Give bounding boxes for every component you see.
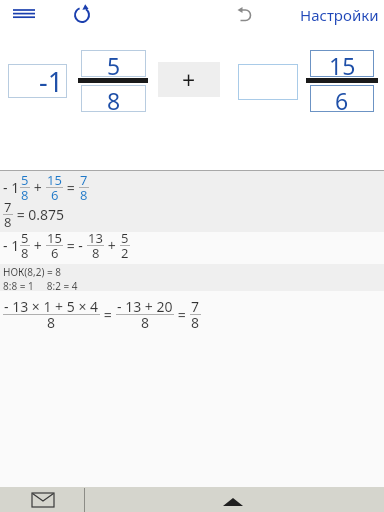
staticText: - 1: [3, 178, 20, 197]
button[interactable]: [238, 64, 298, 100]
button[interactable]: [70, 2, 94, 26]
staticText: +: [182, 64, 196, 95]
staticText: = -: [63, 236, 87, 255]
button[interactable]: Настройки: [300, 0, 384, 30]
staticText: 5: [21, 229, 29, 247]
button[interactable]: - 1: [3, 231, 130, 260]
staticText: 8: [21, 186, 29, 204]
staticText: 6: [51, 244, 59, 262]
button[interactable]: [20, 487, 65, 512]
staticText: -1: [39, 63, 64, 100]
staticText: = 0.875: [13, 205, 65, 224]
staticText: =: [174, 305, 190, 324]
staticText: 8: [191, 313, 200, 332]
button[interactable]: - 1: [3, 173, 89, 202]
staticText: =: [63, 178, 79, 197]
staticText: 8: [80, 186, 88, 204]
staticText: - 13 + 20: [117, 297, 173, 316]
staticText: 15: [47, 229, 62, 247]
staticText: Настройки: [300, 5, 379, 25]
staticText: 8: [107, 85, 121, 112]
staticText: 8: [21, 244, 29, 262]
button[interactable]: -1: [8, 64, 67, 98]
staticText: - 13 × 1 + 5 × 4: [4, 297, 99, 316]
staticText: =: [100, 305, 116, 324]
button[interactable]: 5: [81, 50, 146, 77]
button[interactable]: [203, 487, 263, 512]
button[interactable]: 8: [81, 85, 146, 112]
staticText: 8: [47, 313, 56, 332]
staticText: НОК(8,2) = 8: [3, 265, 62, 279]
button[interactable]: [8, 4, 40, 24]
button[interactable]: 7: [3, 200, 65, 229]
staticText: 5: [121, 229, 129, 247]
staticText: 15: [329, 50, 356, 77]
staticText: +: [30, 236, 46, 255]
staticText: 2: [121, 244, 129, 262]
staticText: 5: [107, 50, 121, 77]
staticText: 7: [4, 198, 12, 216]
staticText: 5: [21, 171, 29, 189]
staticText: 7: [80, 171, 88, 189]
staticText: 8: [4, 213, 12, 231]
button[interactable]: [232, 2, 258, 26]
staticText: +: [30, 178, 46, 197]
staticText: 8: [141, 313, 150, 332]
staticText: 6: [51, 186, 59, 204]
staticText: 7: [191, 297, 200, 316]
staticText: 15: [47, 171, 62, 189]
staticText: +: [104, 236, 120, 255]
button[interactable]: 6: [310, 85, 374, 112]
button[interactable]: НОК(8,2) = 8: [3, 265, 78, 293]
button[interactable]: +: [158, 62, 220, 97]
staticText: 6: [335, 85, 349, 112]
staticText: 8: [92, 244, 100, 262]
button[interactable]: - 13 × 1 + 5 × 4: [3, 299, 201, 330]
staticText: 8:8 = 1 8:2 = 4: [3, 279, 78, 293]
staticText: 13: [88, 229, 103, 247]
staticText: - 1: [3, 236, 20, 255]
button[interactable]: 15: [310, 50, 374, 77]
